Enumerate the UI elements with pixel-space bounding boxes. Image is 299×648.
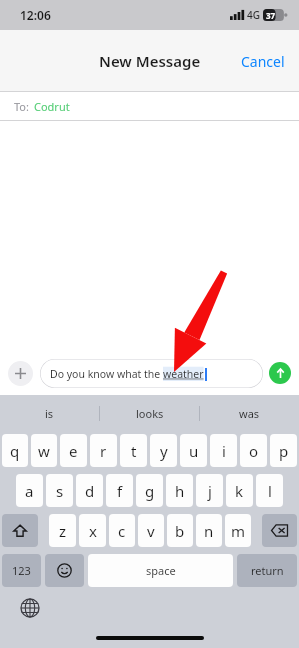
staticText: j xyxy=(208,481,212,501)
staticText: 37 xyxy=(266,10,276,21)
staticText: return xyxy=(251,563,284,578)
staticText: 12:06 xyxy=(20,7,51,23)
staticText: Codrut xyxy=(34,99,70,114)
staticText: m xyxy=(231,521,246,541)
staticText: z xyxy=(59,521,67,541)
staticText: g xyxy=(145,481,155,501)
staticText: 123 xyxy=(12,563,31,578)
button[interactable]: m xyxy=(225,514,251,547)
button[interactable]: e xyxy=(60,434,87,467)
button[interactable]: z xyxy=(49,514,76,547)
staticText: s xyxy=(56,481,64,501)
button[interactable]: 123 xyxy=(2,554,41,587)
button[interactable]: i xyxy=(210,434,237,467)
staticText: i xyxy=(222,441,226,461)
staticText: o xyxy=(249,441,259,461)
button[interactable]: o xyxy=(240,434,267,467)
button[interactable]: y xyxy=(150,434,177,467)
staticText: looks xyxy=(136,406,164,421)
button[interactable]: d xyxy=(76,474,103,507)
button[interactable]: u xyxy=(180,434,207,467)
staticText: was xyxy=(239,406,260,421)
button[interactable]: x xyxy=(79,514,106,547)
button[interactable]: f xyxy=(106,474,133,507)
staticText: Cancel xyxy=(241,52,285,71)
staticText: 4G xyxy=(247,8,260,22)
staticText: y xyxy=(160,441,168,461)
button[interactable]: s xyxy=(46,474,73,507)
button[interactable]: Do you know what the weather xyxy=(40,359,263,388)
staticText: c xyxy=(118,521,126,541)
staticText: b xyxy=(175,521,185,541)
staticText: v xyxy=(147,521,155,541)
button[interactable]: Backspace xyxy=(262,514,297,547)
staticText: is xyxy=(45,406,54,421)
staticText: t xyxy=(131,441,137,461)
staticText: To: xyxy=(14,99,29,114)
button[interactable]: g xyxy=(136,474,163,507)
staticText: h xyxy=(175,481,185,501)
staticText: New Message xyxy=(99,51,201,71)
button[interactable]: b xyxy=(167,514,193,547)
button[interactable]: t xyxy=(120,434,147,467)
staticText: u xyxy=(189,441,199,461)
staticText: l xyxy=(268,481,272,501)
button[interactable]: Send xyxy=(269,362,291,384)
button[interactable]: a xyxy=(16,474,43,507)
button[interactable]: Add attachment xyxy=(8,361,33,386)
button[interactable]: Change keyboard xyxy=(20,598,40,618)
staticText: x xyxy=(89,521,97,541)
button[interactable]: v xyxy=(138,514,164,547)
staticText: d xyxy=(85,481,95,501)
staticText: n xyxy=(204,521,214,541)
button[interactable]: n xyxy=(196,514,222,547)
staticText: f xyxy=(117,481,123,501)
button[interactable]: Cancel xyxy=(227,42,299,81)
button[interactable]: p xyxy=(270,434,297,467)
staticText: Do you know what the weather xyxy=(50,367,204,381)
button[interactable]: w xyxy=(31,434,57,467)
button[interactable]: space xyxy=(88,554,233,587)
button[interactable]: is xyxy=(0,395,99,431)
staticText: q xyxy=(10,441,20,461)
button[interactable]: return xyxy=(237,554,297,587)
staticText: r xyxy=(100,441,107,461)
button[interactable]: h xyxy=(166,474,193,507)
staticText: e xyxy=(69,441,78,461)
staticText: p xyxy=(279,441,289,461)
button[interactable]: q xyxy=(2,434,28,467)
button[interactable]: r xyxy=(90,434,117,467)
staticText: w xyxy=(38,441,50,461)
button[interactable]: l xyxy=(256,474,283,507)
button[interactable]: was xyxy=(200,395,299,431)
button[interactable]: j xyxy=(196,474,223,507)
button[interactable]: k xyxy=(226,474,253,507)
button[interactable]: Shift xyxy=(2,514,38,547)
button[interactable]: Emoji xyxy=(45,554,84,587)
staticText: k xyxy=(235,481,244,501)
button[interactable]: looks xyxy=(100,395,199,431)
button[interactable]: c xyxy=(109,514,135,547)
staticText: a xyxy=(25,481,34,501)
staticText: space xyxy=(146,563,176,578)
